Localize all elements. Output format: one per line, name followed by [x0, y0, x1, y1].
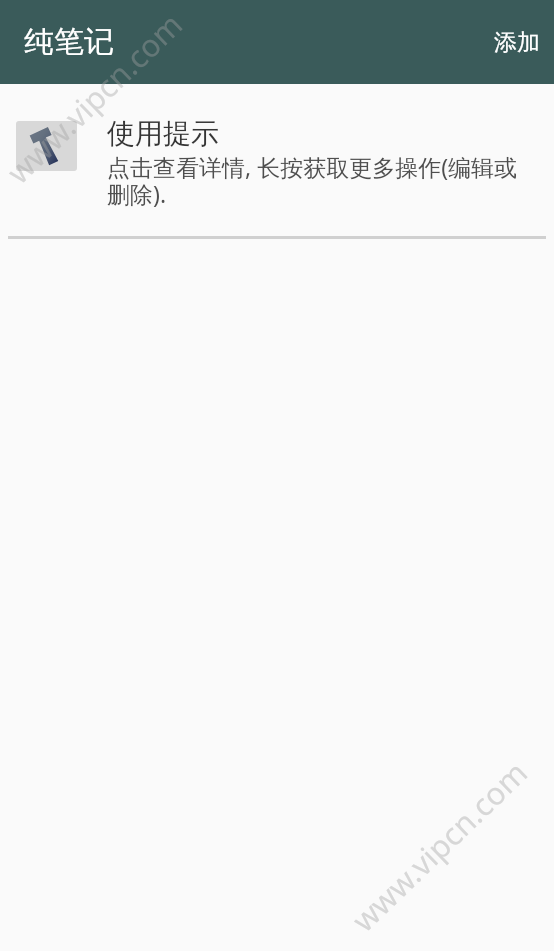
- staticText: 点击查看详情, 长按获取更多操作(编辑或删除).: [107, 151, 538, 210]
- staticText: 纯笔记: [24, 23, 114, 61]
- staticText: www.vipcn.com: [342, 752, 536, 940]
- staticText: 添加: [494, 28, 540, 57]
- staticText: 使用提示: [107, 116, 219, 151]
- staticText: www.vipcn.com: [0, 4, 191, 192]
- button[interactable]: 添加: [476, 6, 554, 79]
- button[interactable]: 使用提示: [0, 84, 554, 236]
